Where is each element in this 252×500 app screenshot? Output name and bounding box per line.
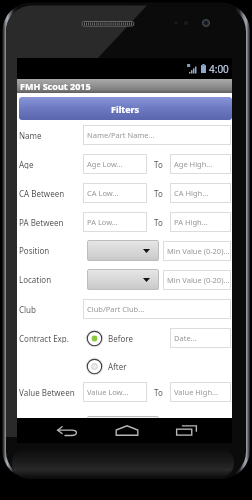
staticText: To <box>154 188 163 198</box>
staticText: CA Between <box>19 188 65 198</box>
button[interactable]: Date... <box>170 328 231 348</box>
button[interactable]: Age Low... <box>83 154 147 174</box>
staticText: Filters <box>111 103 140 115</box>
staticText: Min Value (0-20)... <box>167 246 230 256</box>
button[interactable]: CA High... <box>170 183 231 203</box>
button[interactable]: Value Low... <box>83 382 147 402</box>
button[interactable]: PA High... <box>170 212 231 232</box>
staticText: Value Low... <box>87 387 129 397</box>
staticText: CA Low... <box>87 188 119 198</box>
staticText: PA High... <box>174 217 208 227</box>
staticText: Value Between <box>19 387 75 397</box>
staticText: Min Value (0-20)... <box>167 275 230 285</box>
staticText: Contract Exp. <box>19 333 69 343</box>
staticText: Age <box>19 159 34 169</box>
staticText: Position <box>19 245 50 255</box>
button[interactable]: Recent apps <box>169 418 203 443</box>
button[interactable]: Age High... <box>170 154 231 174</box>
staticText: Club <box>19 304 36 314</box>
staticText: 4:00 <box>209 62 229 76</box>
staticText: Value High... <box>174 387 219 397</box>
button[interactable]: Back <box>50 418 84 443</box>
staticText: PA Low... <box>87 217 118 227</box>
staticText: To <box>154 387 163 397</box>
staticText: To <box>154 217 163 227</box>
staticText: Age Low... <box>87 159 123 169</box>
button[interactable]: Name/Part Name... <box>83 125 231 145</box>
button[interactable]: Home <box>110 418 144 443</box>
staticText: PA Between <box>19 217 64 227</box>
button[interactable]: Filters <box>19 97 232 120</box>
button[interactable]: Before <box>86 330 133 347</box>
button[interactable]: After <box>86 358 127 375</box>
button[interactable]: CA Low... <box>83 183 147 203</box>
button[interactable]: Select option <box>87 240 159 261</box>
staticText: Name/Part Name... <box>87 130 155 140</box>
button[interactable]: PA Low... <box>83 212 147 232</box>
staticText: Before <box>108 333 133 344</box>
staticText: FMH Scout 2015 <box>20 80 91 92</box>
staticText: Location <box>19 274 52 284</box>
button[interactable]: Select option <box>87 269 159 290</box>
staticText: Club/Part Club... <box>87 304 145 314</box>
staticText: Date... <box>174 333 197 343</box>
staticText: Name <box>19 130 42 140</box>
button[interactable]: Value High... <box>170 382 231 402</box>
staticText: To <box>154 159 163 169</box>
staticText: CA High... <box>174 188 209 198</box>
staticText: After <box>108 361 127 372</box>
button[interactable]: Club/Part Club... <box>83 299 231 319</box>
button[interactable]: Min Value (0-20)... <box>163 270 231 290</box>
button[interactable]: Min Value (0-20)... <box>163 241 231 261</box>
staticText: Age High... <box>174 159 213 169</box>
